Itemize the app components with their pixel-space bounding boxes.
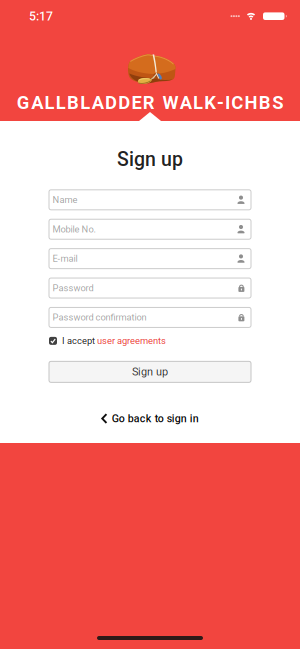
button[interactable]: Go back to sign in [101,412,199,425]
staticText: Mobile No. [52,224,95,235]
staticText: 5:17 [29,9,53,23]
staticText: Go back to sign in [112,412,199,425]
button[interactable]: user agreements [97,335,166,346]
staticText: Sign up [132,365,168,378]
button[interactable]: Sign up [49,361,251,382]
button[interactable]: Mobile No. [49,219,251,239]
button[interactable]: Name [49,190,251,210]
staticText: Password confirmation [52,312,146,323]
staticText: E-mail [52,253,77,264]
button[interactable]: Password confirmation [49,307,251,327]
staticText: Password [52,282,93,293]
staticText: user agreements [97,335,166,346]
staticText: GALLBLADDER WALK-ICHBS [17,92,283,113]
button[interactable]: E-mail [49,249,251,269]
button[interactable]: Password [49,278,251,298]
staticText: I accept [62,335,97,346]
staticText: Sign up [117,148,183,171]
button[interactable]: I accept [49,335,97,346]
staticText: Name [52,194,77,205]
